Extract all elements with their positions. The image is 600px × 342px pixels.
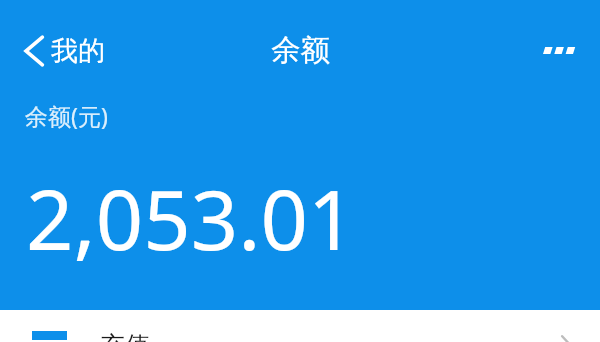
staticText: 余额(元) (25, 100, 108, 131)
staticText: 充值 (100, 330, 150, 342)
button[interactable]: 我的 (15, 28, 114, 74)
staticText: 我的 (51, 34, 105, 68)
button[interactable]: More options (528, 26, 588, 74)
button[interactable]: 充值 (0, 310, 600, 342)
staticText: 2,053.01 (26, 161, 356, 274)
staticText: 余额 (271, 32, 330, 69)
